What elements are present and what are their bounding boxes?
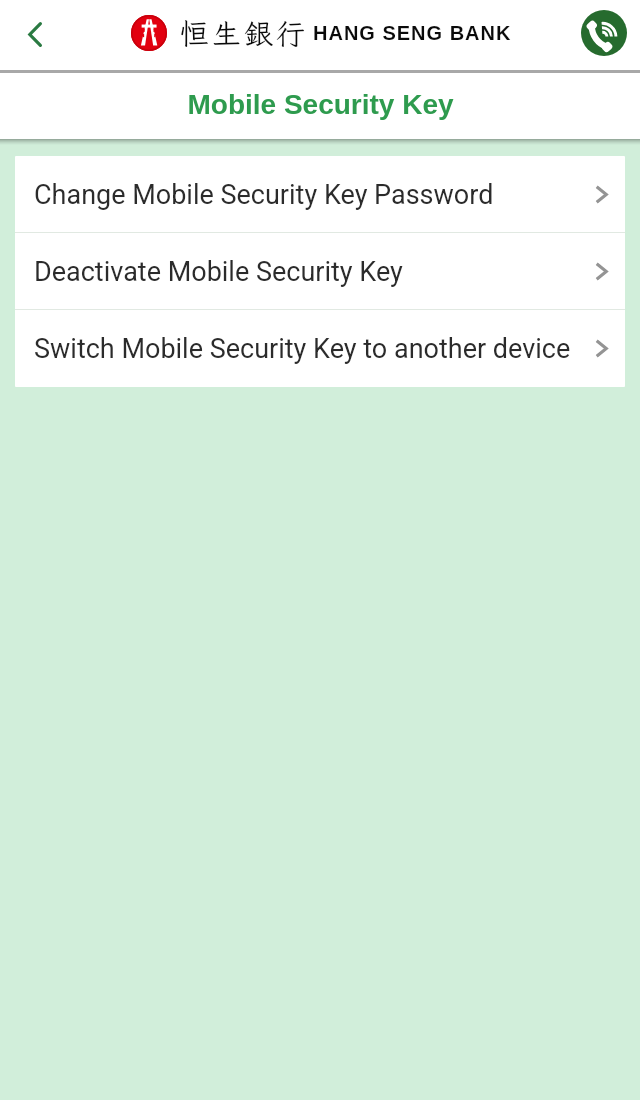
button[interactable]: Change Mobile Security Key Password bbox=[15, 156, 625, 233]
button[interactable]: Call us bbox=[581, 10, 627, 56]
staticText: 恒生銀行 bbox=[180, 14, 309, 52]
staticText: Deactivate Mobile Security Key bbox=[34, 256, 595, 288]
staticText: Mobile Security Key bbox=[187, 89, 454, 120]
button[interactable]: Switch Mobile Security Key to another de… bbox=[15, 310, 625, 387]
button[interactable]: Back bbox=[0, 0, 70, 70]
staticText: Change Mobile Security Key Password bbox=[34, 179, 595, 211]
button[interactable]: Deactivate Mobile Security Key bbox=[15, 233, 625, 310]
staticText: Switch Mobile Security Key to another de… bbox=[34, 333, 595, 365]
staticText: HANG SENG BANK bbox=[313, 22, 512, 44]
